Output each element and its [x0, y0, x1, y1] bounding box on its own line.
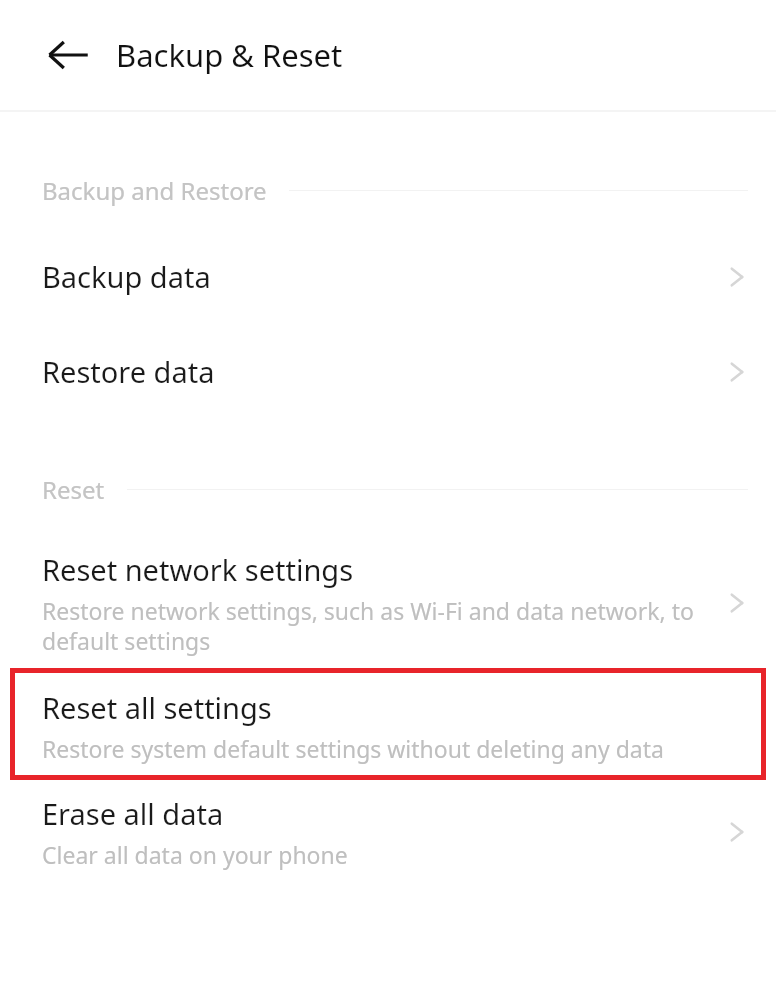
button[interactable]: Restore data [0, 352, 776, 391]
button[interactable]: Reset network settings [0, 550, 776, 656]
staticText: Backup & Reset [116, 34, 343, 76]
staticText: Clear all data on your phone [42, 839, 348, 870]
button[interactable]: Backup data [0, 257, 776, 296]
staticText: Backup and Restore [42, 174, 267, 207]
button[interactable]: Back [36, 23, 100, 87]
button[interactable]: Erase all data [0, 794, 776, 870]
staticText: Reset network settings [42, 550, 354, 589]
staticText: Backup data [42, 257, 211, 296]
staticText: Erase all data [42, 794, 224, 833]
button[interactable]: Reset all settings [10, 668, 766, 780]
staticText: Restore system default settings without … [42, 733, 664, 764]
staticText: Restore network settings, such as Wi-Fi … [42, 595, 714, 656]
staticText: Reset all settings [42, 688, 272, 727]
staticText: Restore data [42, 352, 215, 391]
staticText: Reset [42, 473, 105, 506]
